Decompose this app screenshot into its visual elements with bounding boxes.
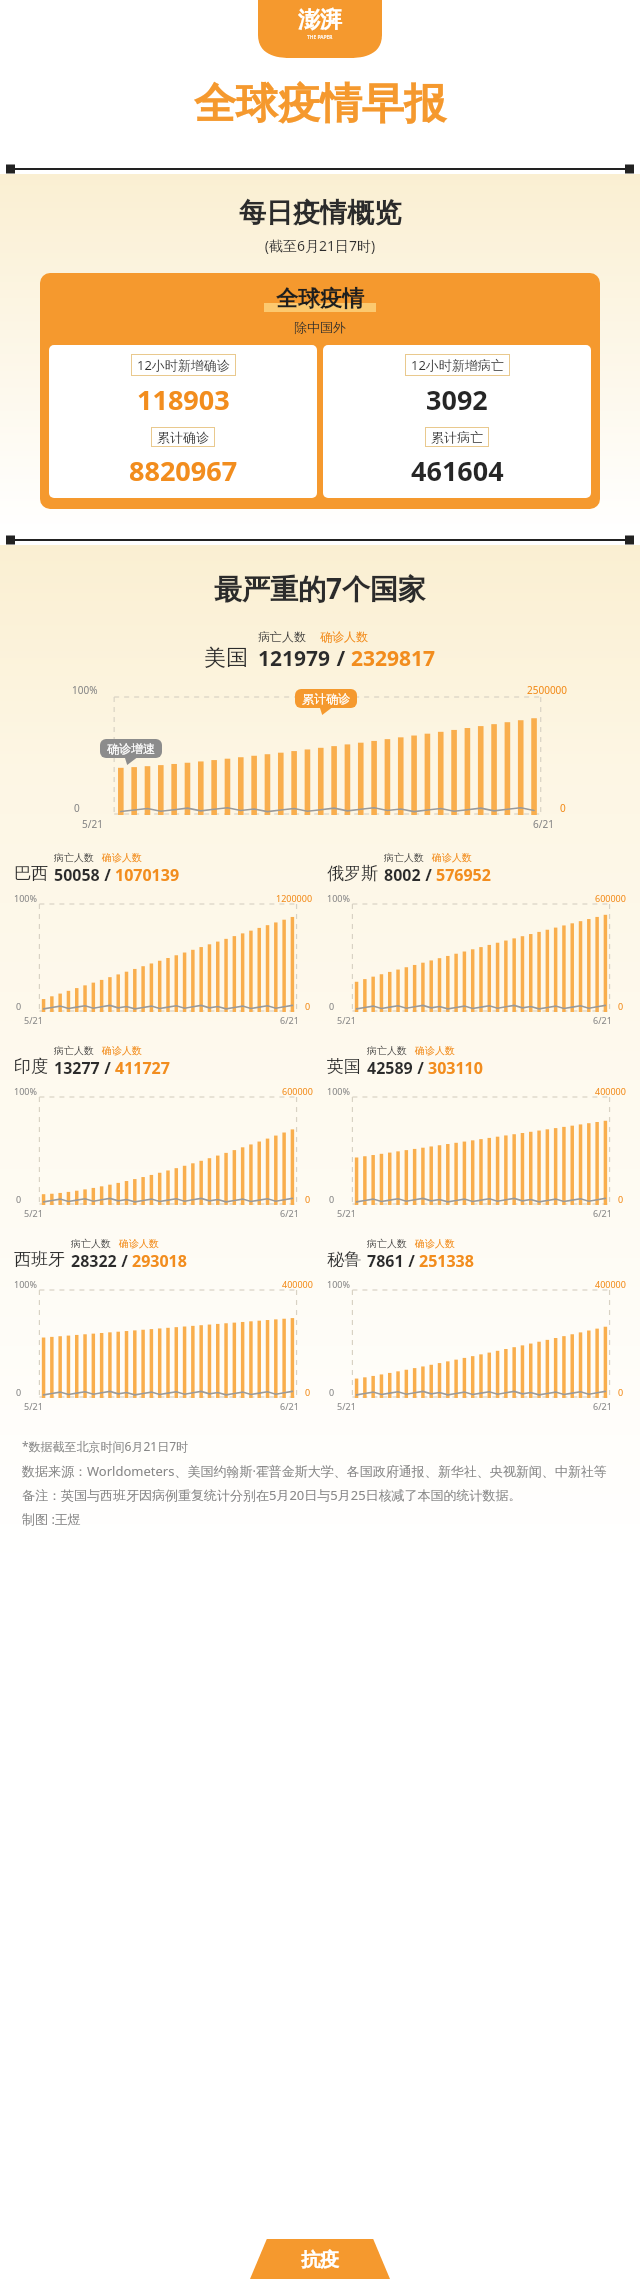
staticText: 病亡人数 — [54, 1044, 94, 1057]
staticText: 411727 — [115, 1057, 170, 1079]
staticText: / — [421, 864, 436, 886]
staticText: 美国 — [204, 644, 248, 672]
staticText: 0 — [329, 1000, 335, 1012]
staticText: 6/21 — [280, 1400, 299, 1412]
staticText: 1070139 — [115, 864, 180, 886]
staticText: 病亡人数 — [54, 851, 94, 864]
staticText: 400000 — [595, 1278, 626, 1290]
staticText: 确诊人数 — [119, 1237, 159, 1250]
staticText: 累计确诊 — [157, 429, 209, 445]
staticText: 5/21 — [337, 1400, 356, 1412]
staticText: / — [404, 1250, 419, 1272]
staticText: 8002 — [384, 864, 421, 886]
staticText: *数据截至北京时间6月21日7时 — [22, 1438, 189, 1454]
staticText: 303110 — [428, 1057, 483, 1079]
staticText: 12小时新增病亡 — [411, 356, 504, 374]
staticText: 0 — [16, 1386, 22, 1398]
staticText: 3092 — [426, 381, 488, 418]
button[interactable]: 12小时新增确诊 — [49, 345, 317, 498]
staticText: 累计病亡 — [431, 429, 483, 445]
staticText: 制图 :王煜 — [22, 1510, 81, 1528]
staticText: 0 — [618, 1386, 624, 1398]
staticText: 英国 — [327, 1056, 361, 1077]
staticText: 0 — [305, 1193, 311, 1205]
staticText: / — [100, 864, 115, 886]
staticText: 50058 — [54, 864, 100, 886]
staticText: 除中国外 — [40, 319, 600, 335]
staticText: 0 — [329, 1386, 335, 1398]
staticText: 确诊增速 — [107, 741, 155, 756]
button[interactable]: 俄罗斯 — [327, 851, 626, 886]
staticText: 5/21 — [24, 1014, 43, 1026]
staticText: 6/21 — [593, 1400, 612, 1412]
staticText: 确诊人数 — [415, 1044, 455, 1057]
staticText: 每日疫情概览 — [0, 196, 640, 230]
button[interactable]: 西班牙 — [14, 1237, 313, 1272]
button[interactable]: 澎湃新闻 — [258, 0, 382, 58]
staticText: 6/21 — [280, 1207, 299, 1219]
staticText: 6/21 — [593, 1207, 612, 1219]
staticText: 巴西 — [14, 863, 48, 884]
staticText: 0 — [305, 1386, 311, 1398]
staticText: 5/21 — [24, 1207, 43, 1219]
staticText: 7861 — [367, 1250, 404, 1272]
staticText: 6/21 — [533, 817, 554, 831]
staticText: 600000 — [282, 1085, 313, 1097]
staticText: 病亡人数 — [367, 1237, 407, 1250]
button[interactable]: 美国 — [26, 629, 614, 673]
staticText: 121979 — [258, 644, 331, 673]
staticText: 0 — [560, 801, 566, 815]
staticText: 100% — [327, 892, 350, 904]
staticText: 100% — [14, 1278, 37, 1290]
staticText: 0 — [16, 1000, 22, 1012]
button[interactable]: 12小时新增病亡 — [323, 345, 591, 498]
staticText: 400000 — [282, 1278, 313, 1290]
staticText: 病亡人数 — [367, 1044, 407, 1057]
staticText: 6/21 — [593, 1014, 612, 1026]
staticText: 俄罗斯 — [327, 863, 378, 884]
staticText: / — [117, 1250, 132, 1272]
button[interactable]: 全球疫情 — [40, 273, 600, 509]
staticText: (截至6月21日7时) — [0, 236, 640, 255]
staticText: 0 — [618, 1193, 624, 1205]
staticText: 抗疫 — [250, 2248, 390, 2272]
staticText: / — [331, 644, 351, 673]
staticText: 印度 — [14, 1056, 48, 1077]
staticText: 5/21 — [24, 1400, 43, 1412]
staticText: 0 — [74, 801, 80, 815]
staticText: 400000 — [595, 1085, 626, 1097]
staticText: 0 — [16, 1193, 22, 1205]
button[interactable]: 巴西 — [14, 851, 313, 886]
staticText: 42589 — [367, 1057, 413, 1079]
button[interactable]: 秘鲁 — [327, 1237, 626, 1272]
staticText: 累计确诊 — [302, 691, 350, 706]
staticText: 8820967 — [129, 452, 238, 489]
staticText: 秘鲁 — [327, 1249, 361, 1270]
staticText: 100% — [327, 1085, 350, 1097]
staticText: 600000 — [595, 892, 626, 904]
staticText: 6/21 — [280, 1014, 299, 1026]
staticText: 全球疫情早报 — [194, 78, 446, 131]
button[interactable]: 抗疫 — [250, 2239, 390, 2279]
staticText: 西班牙 — [14, 1249, 65, 1270]
staticText: 数据来源：Worldometers、美国约翰斯·霍普金斯大学、各国政府通报、新华… — [22, 1462, 607, 1480]
staticText: 2500000 — [527, 683, 568, 697]
staticText: 0 — [618, 1000, 624, 1012]
staticText: / — [100, 1057, 115, 1079]
staticText: 13277 — [54, 1057, 100, 1079]
staticText: 12小时新增确诊 — [137, 356, 230, 374]
staticText: 病亡人数 — [258, 629, 306, 644]
button[interactable]: 印度 — [14, 1044, 313, 1079]
staticText: 5/21 — [337, 1207, 356, 1219]
staticText: 100% — [327, 1278, 350, 1290]
staticText: 最严重的7个国家 — [14, 569, 626, 607]
staticText: 澎湃 — [298, 6, 342, 34]
button[interactable]: 英国 — [327, 1044, 626, 1079]
staticText: 确诊人数 — [432, 851, 472, 864]
staticText: 251338 — [419, 1250, 474, 1272]
staticText: 28322 — [71, 1250, 117, 1272]
staticText: 5/21 — [337, 1014, 356, 1026]
staticText: 确诊人数 — [320, 629, 368, 644]
staticText: 293018 — [132, 1250, 187, 1272]
staticText: 病亡人数 — [71, 1237, 111, 1250]
